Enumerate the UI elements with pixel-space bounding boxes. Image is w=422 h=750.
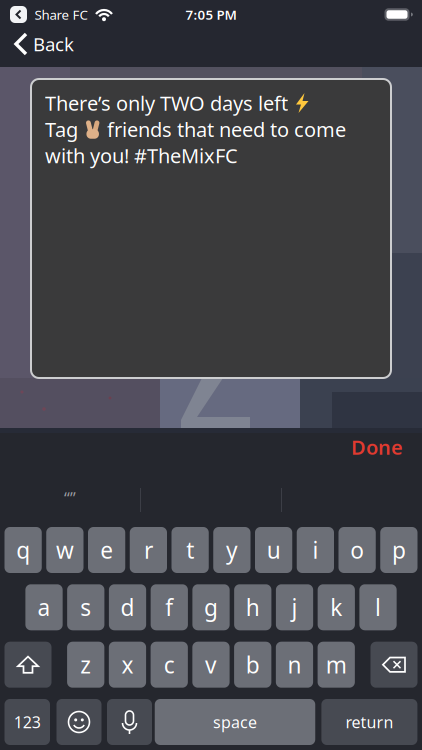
staticText: 7:05 PM xyxy=(185,6,236,23)
button[interactable]: h xyxy=(234,584,271,630)
staticText: e xyxy=(100,535,113,565)
staticText: friends that need to come xyxy=(107,116,346,143)
staticText: with you! #TheMixFC xyxy=(45,142,238,169)
button[interactable]: a xyxy=(25,584,63,630)
button[interactable]: space xyxy=(155,699,315,745)
button[interactable]: u xyxy=(255,527,292,573)
button[interactable] xyxy=(56,699,101,745)
staticText: 123 xyxy=(14,711,41,733)
button[interactable]: v xyxy=(192,642,229,688)
button[interactable]: q xyxy=(4,527,42,573)
button[interactable]: t xyxy=(171,527,209,573)
button[interactable]: w xyxy=(46,527,83,573)
button[interactable]: return xyxy=(321,699,417,745)
staticText: return xyxy=(345,711,393,733)
staticText: s xyxy=(80,592,91,622)
staticText: u xyxy=(267,535,281,565)
staticText: v xyxy=(205,650,217,680)
button[interactable]: o xyxy=(338,527,376,573)
button[interactable]: d xyxy=(109,584,146,630)
staticText: o xyxy=(350,535,364,565)
button[interactable] xyxy=(10,6,27,23)
button[interactable]: l xyxy=(359,584,397,630)
staticText: l xyxy=(375,592,381,622)
staticText: d xyxy=(120,592,134,622)
button[interactable]: c xyxy=(151,642,188,688)
staticText: Back xyxy=(33,32,74,56)
staticText: “” xyxy=(64,487,76,509)
button[interactable]: j xyxy=(276,584,313,630)
button[interactable]: m xyxy=(318,642,355,688)
button[interactable]: 123 xyxy=(4,699,50,745)
staticText: n xyxy=(287,650,301,680)
staticText: a xyxy=(37,592,50,622)
staticText: t xyxy=(186,535,194,565)
staticText: r xyxy=(144,535,153,565)
staticText: w xyxy=(56,535,74,565)
staticText: q xyxy=(16,535,30,565)
button[interactable]: y xyxy=(213,527,250,573)
button[interactable]: z xyxy=(67,642,104,688)
staticText: i xyxy=(312,535,318,565)
staticText: p xyxy=(392,535,406,565)
staticText: y xyxy=(226,535,238,565)
button[interactable]: x xyxy=(109,642,146,688)
staticText: Tag xyxy=(45,116,78,143)
button[interactable]: k xyxy=(318,584,355,630)
staticText: Share FC xyxy=(34,6,87,23)
button[interactable]: “” xyxy=(5,481,135,515)
button[interactable]: Back xyxy=(7,26,91,62)
staticText: m xyxy=(326,650,347,680)
staticText: There’s only TWO days left xyxy=(45,90,288,116)
staticText: j xyxy=(291,592,297,622)
button[interactable] xyxy=(107,699,152,745)
button[interactable]: i xyxy=(297,527,334,573)
staticText: x xyxy=(121,650,133,680)
staticText: z xyxy=(80,650,91,680)
staticText: h xyxy=(246,592,260,622)
staticText: c xyxy=(164,650,175,680)
button[interactable]: n xyxy=(276,642,313,688)
button[interactable]: r xyxy=(130,527,167,573)
button[interactable] xyxy=(4,642,51,688)
button[interactable]: s xyxy=(67,584,104,630)
button[interactable]: g xyxy=(192,584,230,630)
staticText: space xyxy=(213,711,257,733)
button[interactable] xyxy=(31,79,391,378)
staticText: b xyxy=(246,650,260,680)
staticText: g xyxy=(204,592,218,622)
button[interactable]: f xyxy=(151,584,188,630)
button[interactable]: p xyxy=(380,527,417,573)
staticText: f xyxy=(165,592,173,622)
staticText: Done xyxy=(351,434,403,460)
button[interactable]: Done xyxy=(342,432,412,462)
button[interactable]: b xyxy=(234,642,271,688)
button[interactable] xyxy=(370,642,417,688)
staticText: k xyxy=(330,592,342,622)
button[interactable]: e xyxy=(88,527,125,573)
